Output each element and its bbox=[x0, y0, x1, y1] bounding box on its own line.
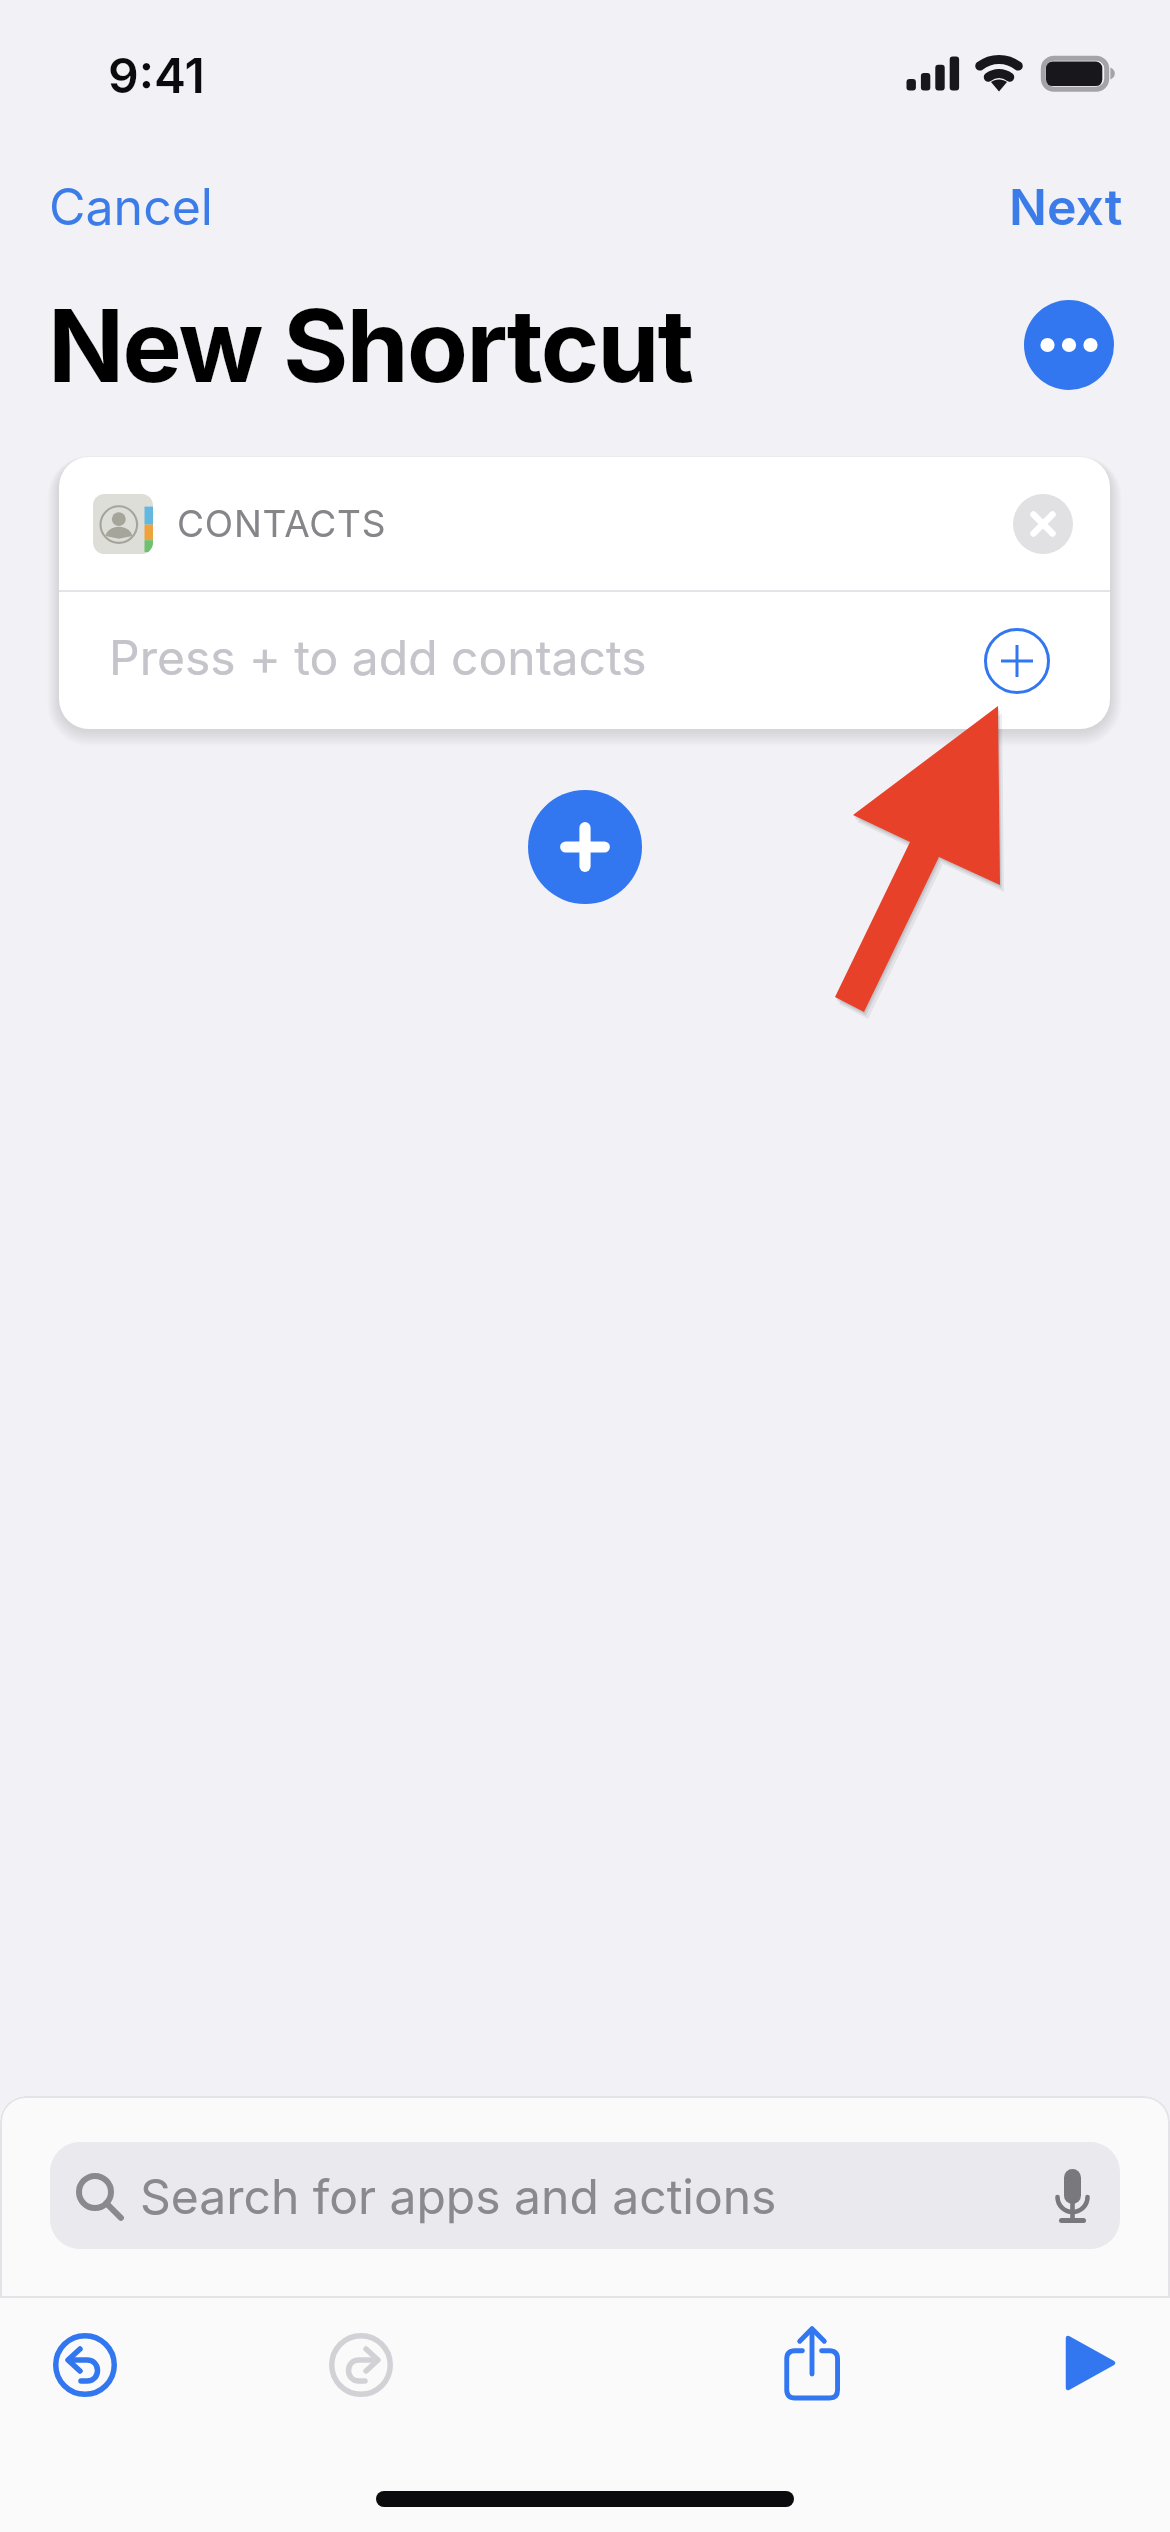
button[interactable]: Redo bbox=[329, 2333, 393, 2397]
staticText: CONTACTS bbox=[177, 501, 387, 546]
staticText: 9:41 bbox=[108, 46, 205, 104]
button[interactable]: Remove Contacts bbox=[1013, 494, 1073, 554]
button[interactable]: Cancel bbox=[36, 165, 226, 249]
button[interactable]: Press + to add contacts bbox=[59, 592, 1110, 729]
staticText: Press + to add contacts bbox=[109, 628, 647, 686]
staticText: Search for apps and actions bbox=[140, 2167, 777, 2225]
button[interactable]: Undo bbox=[53, 2333, 117, 2397]
button[interactable]: Share bbox=[782, 2326, 842, 2404]
button[interactable]: Search for apps and actions bbox=[50, 2142, 1120, 2249]
button[interactable]: Play bbox=[1065, 2335, 1116, 2391]
staticText: Cancel bbox=[49, 177, 213, 237]
button[interactable]: Next bbox=[996, 165, 1136, 249]
staticText: New Shortcut bbox=[48, 285, 693, 406]
button[interactable]: More options bbox=[1024, 300, 1114, 390]
button[interactable]: Add contacts bbox=[984, 628, 1050, 694]
staticText: Next bbox=[1009, 177, 1123, 237]
button[interactable]: CONTACTS bbox=[59, 457, 1110, 590]
button[interactable]: Add action bbox=[528, 790, 642, 904]
